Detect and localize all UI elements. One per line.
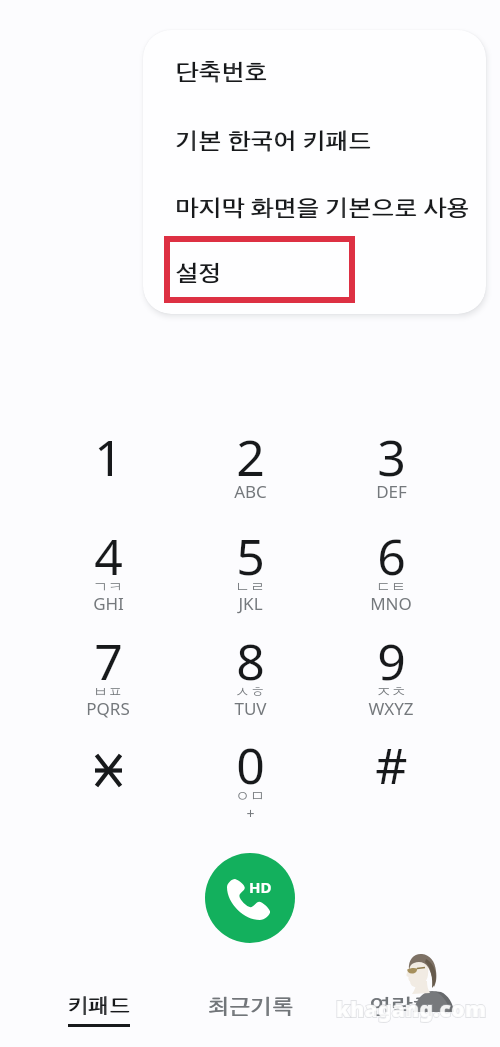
staticText: khagang.com xyxy=(336,995,487,1024)
button[interactable]: 마지막 화면을 기본으로 사용 xyxy=(143,172,486,239)
button[interactable]: # xyxy=(327,725,455,823)
staticText: 최근기록 xyxy=(207,992,293,1019)
staticText: 기본 한국어 키패드 xyxy=(176,123,372,154)
staticText: # xyxy=(375,731,408,799)
staticText: DEF xyxy=(376,480,407,503)
staticText: 설정 xyxy=(176,258,222,287)
staticText: GHI xyxy=(93,592,124,615)
button[interactable]: 설정 xyxy=(143,239,486,306)
staticText: TUV xyxy=(234,697,267,720)
staticText: 마지막 화면을 기본으로 사용 xyxy=(175,190,469,221)
staticText: 9 xyxy=(377,627,406,695)
staticText: 5 xyxy=(236,522,265,590)
staticText: 마지막 화면을 기본으로 사용 xyxy=(176,190,470,221)
button[interactable]: 4 xyxy=(44,516,172,614)
button[interactable]: 6 xyxy=(327,516,455,614)
staticText: ㄴㄹ xyxy=(235,578,265,597)
staticText: ㅈㅊ xyxy=(376,683,406,702)
button[interactable]: Call xyxy=(205,853,295,943)
staticText: 기본 한국어 키패드 xyxy=(175,123,371,154)
staticText: 1 xyxy=(94,423,123,491)
staticText: WXYZ xyxy=(368,697,414,720)
staticText: ㄱㅋ xyxy=(93,578,123,597)
button[interactable]: 키패드 xyxy=(38,992,158,1038)
staticText: ㅇㅁ xyxy=(235,787,265,806)
button[interactable]: 9 xyxy=(327,621,455,719)
staticText: 7 xyxy=(94,627,123,695)
staticText: 키패드 xyxy=(68,992,131,1018)
button[interactable]: 5 xyxy=(186,516,314,614)
staticText: ㄷㅌ xyxy=(376,578,406,597)
button[interactable]: 0 xyxy=(186,725,314,823)
staticText: MNO xyxy=(370,592,412,615)
button[interactable]: 단축번호 xyxy=(143,38,486,105)
staticText: 6 xyxy=(377,522,406,590)
button[interactable]: 7 xyxy=(44,621,172,719)
button[interactable]: 1 xyxy=(44,417,172,515)
button[interactable]: 3 xyxy=(327,417,455,515)
staticText: ㅂㅍ xyxy=(93,683,123,702)
staticText: 3 xyxy=(377,423,406,491)
staticText: + xyxy=(246,804,255,823)
button[interactable] xyxy=(44,725,172,823)
staticText: 2 xyxy=(236,423,265,491)
staticText: 단축번호 xyxy=(175,57,267,86)
staticText: 8 xyxy=(236,627,265,695)
button[interactable]: 8 xyxy=(186,621,314,719)
staticText: ABC xyxy=(234,480,267,503)
staticText: 연락처 xyxy=(370,992,435,1019)
button[interactable]: 기본 한국어 키패드 xyxy=(143,105,486,172)
staticText: JKL xyxy=(238,592,263,615)
button[interactable]: 최근기록 xyxy=(190,992,310,1038)
staticText: 최근기록 xyxy=(208,992,294,1019)
staticText: HD xyxy=(249,877,272,897)
button[interactable]: 연락처 xyxy=(341,992,461,1038)
staticText: 4 xyxy=(94,522,123,590)
staticText: khagang.com xyxy=(336,995,487,1024)
staticText: 단축번호 xyxy=(176,57,268,86)
staticText: 연락처 xyxy=(369,992,434,1019)
staticText: PQRS xyxy=(86,697,130,720)
button[interactable]: 2 xyxy=(186,417,314,515)
staticText: ㅅㅎ xyxy=(235,683,265,702)
staticText: 설정 xyxy=(175,258,221,287)
staticText: 0 xyxy=(236,731,265,799)
staticText: 키패드 xyxy=(67,992,130,1018)
